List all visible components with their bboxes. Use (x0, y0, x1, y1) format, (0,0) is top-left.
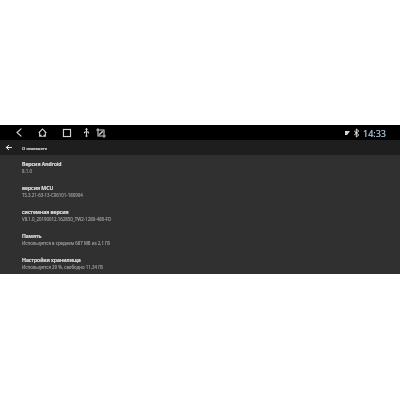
staticText: Версия Android (22, 160, 62, 167)
button[interactable]: Screenshot (93, 125, 108, 140)
staticText: Используется в среднем 687 МБ из 2,1 ГБ (22, 240, 110, 246)
button[interactable]: Версия Android (0, 159, 400, 183)
button[interactable]: Recent apps (59, 125, 74, 140)
button[interactable]: версия MCU (0, 183, 400, 207)
staticText: версия MCU (22, 184, 54, 191)
button[interactable]: Память (0, 231, 400, 255)
button[interactable]: USB connection (79, 125, 94, 140)
button[interactable]: системная версия (0, 207, 400, 231)
button[interactable]: Настройки хранилища (0, 255, 400, 274)
staticText: 8.1.0 (22, 168, 32, 174)
staticText: Память (22, 232, 42, 239)
staticText: V8.1.0_20190012.162850_TW2-1280-480-FD (22, 216, 112, 222)
staticText: Настройки хранилища (22, 256, 81, 263)
staticText: 14:33 (363, 127, 387, 139)
button[interactable]: Home (35, 125, 50, 140)
button[interactable]: Navigate up (2, 140, 16, 155)
staticText: системная версия (22, 208, 69, 215)
staticText: Используется 29 %, свободно 11,34 ГБ (22, 264, 104, 270)
staticText: TS.3.21-63-13-C06101-180904 (22, 192, 83, 198)
staticText: О планшете (22, 145, 48, 151)
button[interactable]: Back (11, 125, 26, 140)
